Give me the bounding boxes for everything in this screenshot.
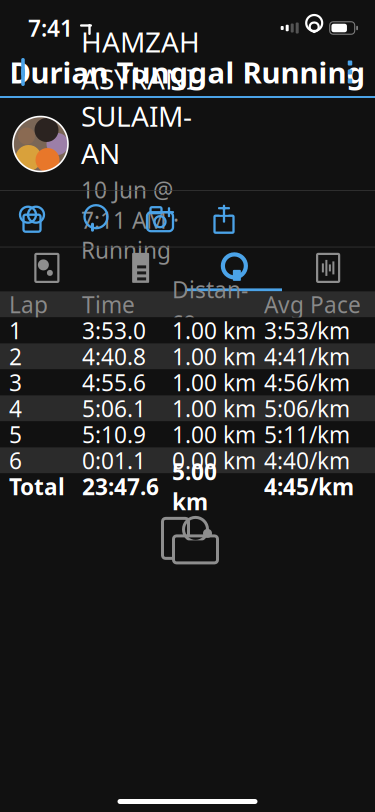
staticText: 3:53/km: [264, 315, 350, 345]
staticText: 0.00 km: [172, 445, 256, 475]
staticText: 2: [9, 341, 22, 371]
button[interactable]: More options: [325, 49, 375, 95]
staticText: 10 Jun @ 7:11 AM · Running: [81, 175, 179, 265]
staticText: 1.00 km: [172, 315, 256, 345]
staticText: Durian Tunggal Running: [9, 52, 365, 91]
staticText: 1.00 km: [172, 419, 256, 449]
button[interactable]: Graphs: [281, 248, 375, 288]
staticText: Lap: [9, 289, 48, 319]
staticText: 4:56/km: [264, 367, 350, 397]
staticText: HAMZAH ASYRANI SULAIMAN: [81, 23, 200, 172]
staticText: Avg Pace: [264, 289, 361, 319]
staticText: Distance: [172, 274, 248, 334]
button[interactable]: Details: [94, 248, 188, 288]
staticText: 5.00 km: [172, 456, 217, 516]
button[interactable]: Share: [192, 192, 256, 246]
staticText: 4:55.6: [82, 367, 146, 397]
staticText: 4:45/km: [264, 471, 354, 501]
staticText: 5:10.9: [82, 419, 146, 449]
staticText: Total: [9, 471, 65, 501]
staticText: 1.00 km: [172, 393, 256, 423]
button[interactable]: Like: [0, 192, 64, 246]
staticText: 7:41: [28, 13, 73, 43]
staticText: 3:53.0: [82, 315, 146, 345]
staticText: 4:41/km: [264, 341, 350, 371]
button[interactable]: Back: [0, 49, 50, 95]
button[interactable]: Add photo: [128, 192, 192, 246]
staticText: 1.00 km: [172, 367, 256, 397]
button[interactable]: Map: [0, 248, 94, 288]
staticText: 1.00 km: [172, 341, 256, 371]
button[interactable]: Laps: [187, 248, 281, 288]
staticText: 0:01.1: [82, 445, 146, 475]
staticText: 5:06.1: [82, 393, 146, 423]
staticText: 4: [9, 393, 22, 423]
staticText: 5:06/km: [264, 393, 350, 423]
staticText: 5: [9, 419, 22, 449]
button[interactable]: HAMZAH ASYRANI SULAIMAN: [0, 98, 375, 190]
staticText: 5:11/km: [264, 419, 350, 449]
staticText: 4:40/km: [264, 445, 350, 475]
staticText: 6: [9, 445, 22, 475]
staticText: 4:40.8: [82, 341, 146, 371]
button[interactable]: Comment: [64, 192, 128, 246]
staticText: 23:47.6: [82, 471, 159, 501]
staticText: 1: [9, 315, 22, 345]
staticText: Time: [82, 289, 135, 319]
staticText: 3: [9, 367, 22, 397]
